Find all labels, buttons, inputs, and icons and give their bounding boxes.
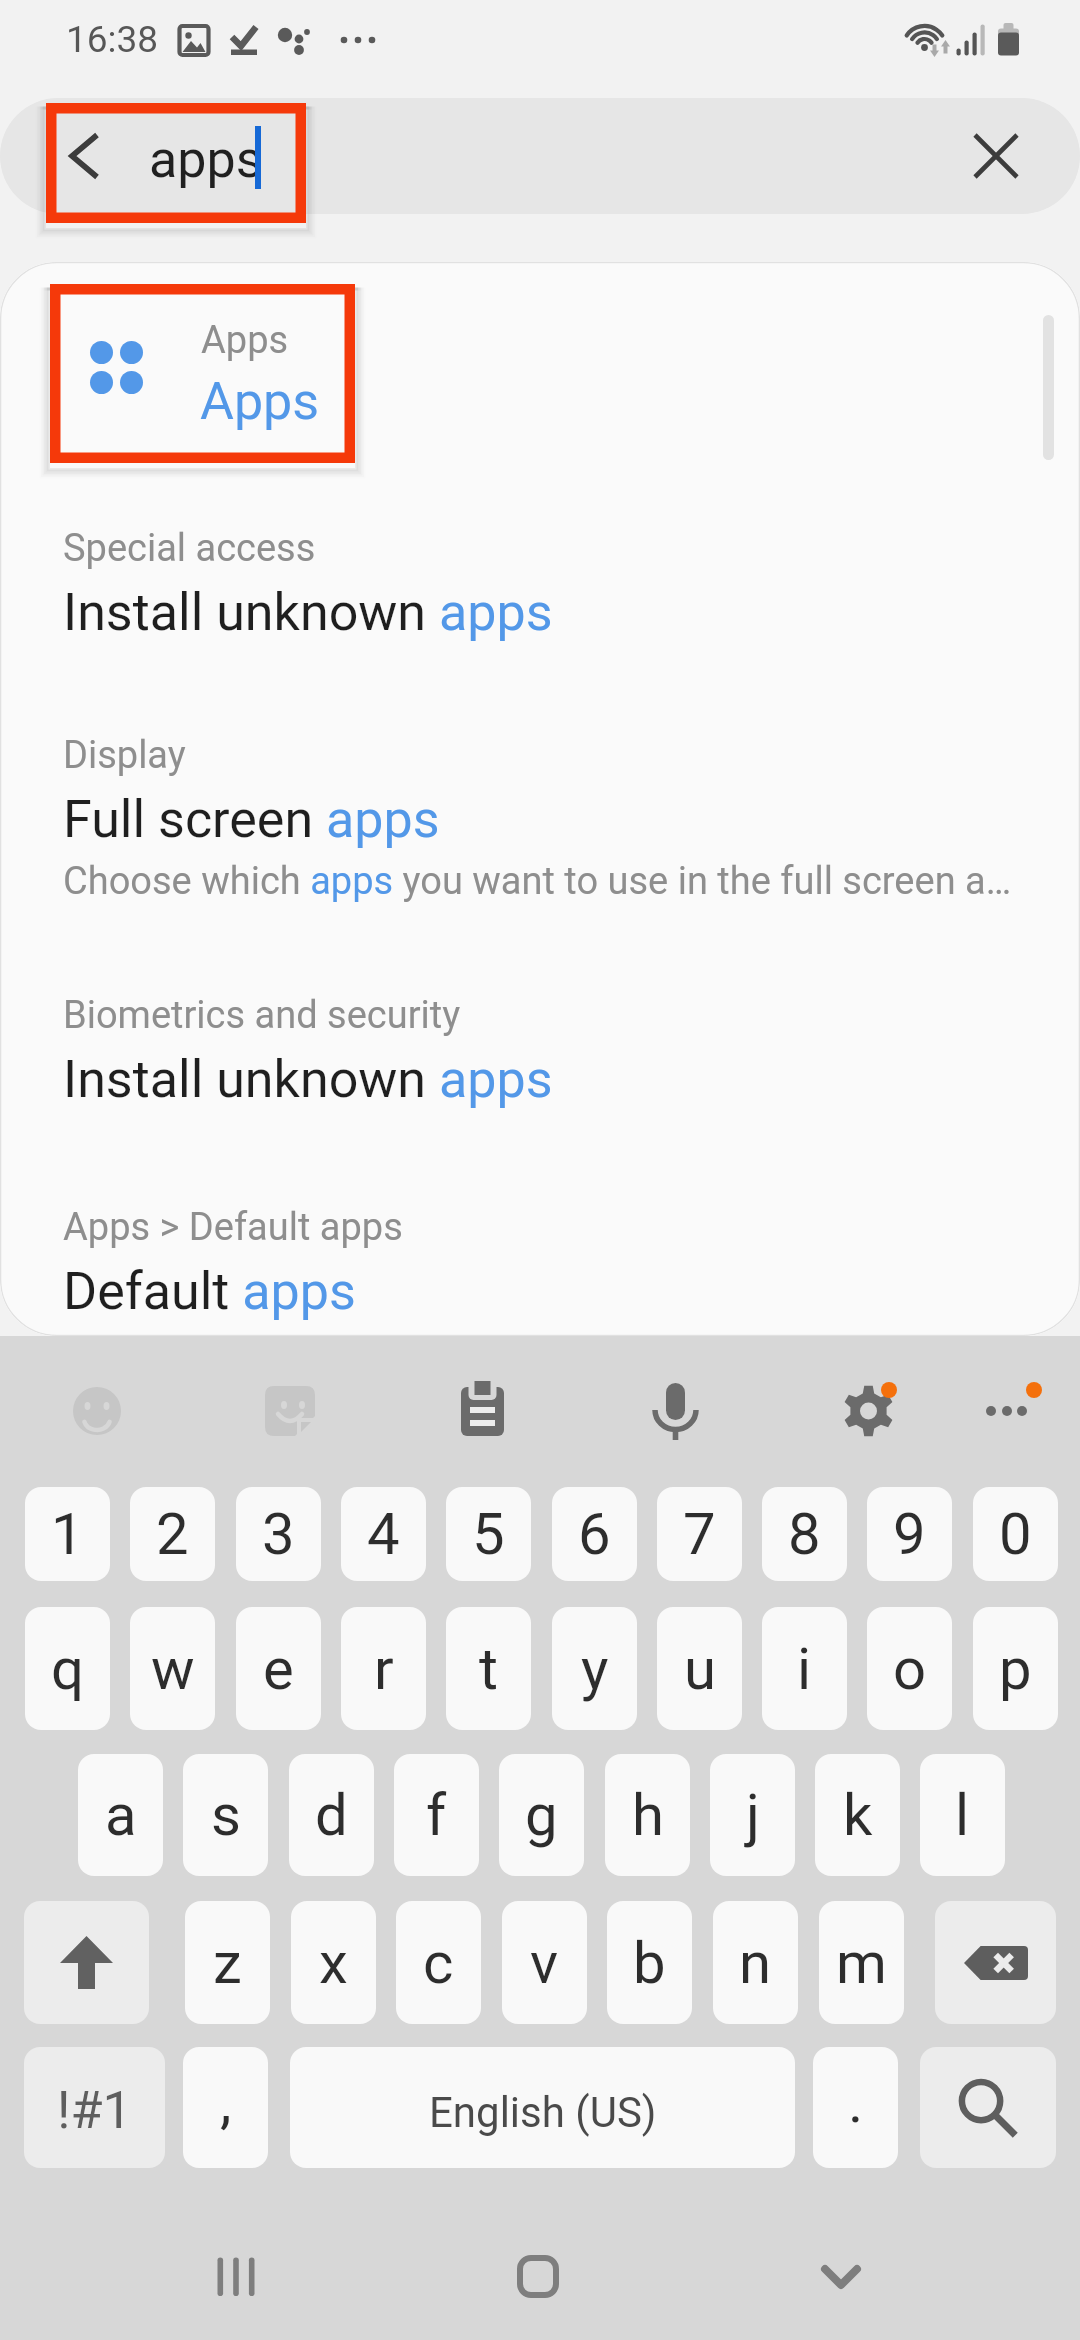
staticText: a bbox=[105, 1781, 137, 1849]
staticText: . bbox=[848, 2068, 864, 2136]
button[interactable]: n bbox=[713, 1901, 798, 2024]
button[interactable]: i bbox=[762, 1607, 847, 1730]
button[interactable]: Emoji bbox=[41, 1358, 151, 1468]
button[interactable]: Clear search bbox=[948, 108, 1044, 204]
button[interactable]: 0 bbox=[973, 1487, 1058, 1581]
button[interactable]: Display bbox=[0, 733, 1080, 913]
button[interactable]: b bbox=[607, 1901, 692, 2024]
button[interactable]: !#1 bbox=[24, 2047, 165, 2168]
staticText: 7 bbox=[683, 1500, 716, 1568]
button[interactable]: Home bbox=[462, 2220, 612, 2340]
button[interactable]: Clipboard bbox=[426, 1358, 536, 1468]
staticText: Biometrics and security bbox=[63, 993, 461, 1038]
button[interactable]: m bbox=[819, 1901, 904, 2024]
staticText: p bbox=[999, 1635, 1032, 1703]
button[interactable]: 5 bbox=[446, 1487, 531, 1581]
button[interactable]: Shift bbox=[24, 1901, 149, 2024]
staticText: 1 bbox=[51, 1500, 84, 1568]
staticText: i bbox=[797, 1635, 812, 1703]
button[interactable]: 8 bbox=[762, 1487, 847, 1581]
button[interactable]: s bbox=[183, 1754, 268, 1876]
staticText: 5 bbox=[472, 1500, 505, 1568]
button[interactable]: 7 bbox=[657, 1487, 742, 1581]
button[interactable]: Recents bbox=[160, 2220, 310, 2340]
staticText: Install unknown apps bbox=[63, 1049, 553, 1110]
button[interactable]: 9 bbox=[867, 1487, 952, 1581]
button[interactable]: Apps > Default apps bbox=[0, 1205, 1080, 1325]
staticText: 4 bbox=[367, 1500, 400, 1568]
button[interactable]: j bbox=[710, 1754, 795, 1876]
staticText: 16:38 bbox=[66, 18, 159, 61]
staticText: Display bbox=[63, 733, 186, 778]
button[interactable]: o bbox=[867, 1607, 952, 1730]
button[interactable]: a bbox=[78, 1754, 163, 1876]
staticText: u bbox=[684, 1635, 716, 1703]
button[interactable]: 1 bbox=[25, 1487, 110, 1581]
staticText: x bbox=[319, 1929, 348, 1997]
button[interactable]: More options bbox=[950, 1358, 1060, 1468]
staticText: 6 bbox=[578, 1500, 611, 1568]
staticText: f bbox=[426, 1781, 447, 1849]
staticText: r bbox=[374, 1635, 394, 1703]
button[interactable]: w bbox=[130, 1607, 215, 1730]
button[interactable]: , bbox=[183, 2047, 268, 2168]
button[interactable]: 4 bbox=[341, 1487, 426, 1581]
staticText: !#1 bbox=[57, 2080, 132, 2141]
button[interactable]: l bbox=[920, 1754, 1005, 1876]
button[interactable]: p bbox=[973, 1607, 1058, 1730]
staticText: s bbox=[211, 1781, 241, 1849]
button[interactable]: 6 bbox=[552, 1487, 637, 1581]
staticText: w bbox=[151, 1635, 195, 1703]
staticText: c bbox=[423, 1929, 454, 1997]
staticText: Special access bbox=[63, 526, 316, 571]
button[interactable]: Search bbox=[920, 2047, 1056, 2168]
button[interactable]: d bbox=[289, 1754, 374, 1876]
staticText: , bbox=[220, 2068, 232, 2136]
button[interactable]: Hide keyboard bbox=[764, 2220, 914, 2340]
staticText: h bbox=[632, 1781, 664, 1849]
button[interactable]: 3 bbox=[236, 1487, 321, 1581]
button[interactable]: q bbox=[25, 1607, 110, 1730]
button[interactable]: f bbox=[394, 1754, 479, 1876]
button[interactable]: 2 bbox=[130, 1487, 215, 1581]
button[interactable]: x bbox=[291, 1901, 376, 2024]
button[interactable]: u bbox=[657, 1607, 742, 1730]
staticText: Full screen apps bbox=[63, 789, 440, 850]
button[interactable]: Special access bbox=[0, 526, 1080, 646]
button[interactable]: Backspace bbox=[935, 1901, 1056, 2024]
staticText: z bbox=[213, 1929, 242, 1997]
staticText: Apps bbox=[200, 371, 320, 432]
button[interactable]: c bbox=[396, 1901, 481, 2024]
button[interactable]: t bbox=[446, 1607, 531, 1730]
staticText: g bbox=[525, 1781, 558, 1849]
staticText: y bbox=[581, 1635, 609, 1703]
button[interactable]: Keyboard settings bbox=[811, 1358, 921, 1468]
button[interactable]: v bbox=[502, 1901, 587, 2024]
button[interactable]: y bbox=[552, 1607, 637, 1730]
button[interactable]: g bbox=[499, 1754, 584, 1876]
staticText: b bbox=[633, 1929, 666, 1997]
staticText: l bbox=[955, 1781, 970, 1849]
button[interactable]: Back bbox=[36, 98, 132, 214]
button[interactable]: Stickers bbox=[233, 1358, 343, 1468]
staticText: e bbox=[263, 1635, 294, 1703]
staticText: Install unknown apps bbox=[63, 582, 553, 643]
staticText: j bbox=[746, 1781, 760, 1849]
button[interactable]: k bbox=[815, 1754, 900, 1876]
button[interactable]: z bbox=[185, 1901, 270, 2024]
button[interactable]: r bbox=[341, 1607, 426, 1730]
staticText: apps bbox=[149, 129, 263, 190]
button[interactable]: Biometrics and security bbox=[0, 993, 1080, 1113]
staticText: 0 bbox=[999, 1500, 1032, 1568]
staticText: Apps > Default apps bbox=[63, 1205, 403, 1250]
button[interactable]: . bbox=[813, 2047, 898, 2168]
staticText: k bbox=[843, 1781, 873, 1849]
button[interactable]: Apps bbox=[0, 284, 1080, 462]
staticText: English (US) bbox=[429, 2088, 657, 2137]
button[interactable]: English (US) bbox=[290, 2047, 795, 2168]
button[interactable]: Voice input bbox=[618, 1358, 728, 1468]
staticText: t bbox=[479, 1635, 498, 1703]
button[interactable]: h bbox=[605, 1754, 690, 1876]
staticText: Default apps bbox=[63, 1261, 356, 1322]
button[interactable]: e bbox=[236, 1607, 321, 1730]
